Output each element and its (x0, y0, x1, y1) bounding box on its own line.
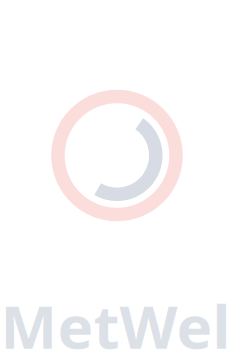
staticText: MetWel (0, 286, 230, 356)
